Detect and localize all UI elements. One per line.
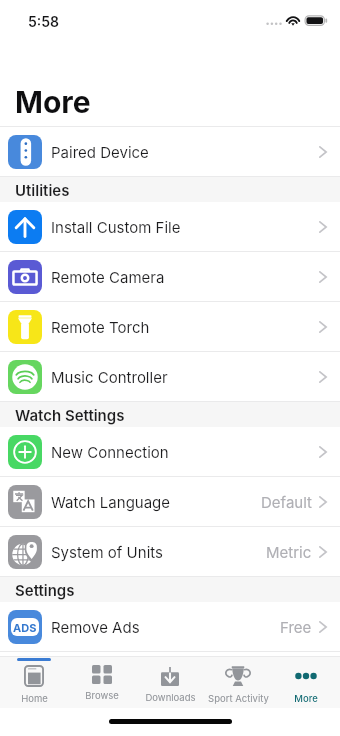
button[interactable]: Remote Torch <box>0 302 340 351</box>
button[interactable]: Watch Language <box>0 477 340 526</box>
staticText: Music Controller <box>51 368 168 386</box>
button[interactable]: Music Controller <box>0 352 340 401</box>
button[interactable]: Sport Activity <box>204 657 272 708</box>
staticText: Sport Activity <box>208 693 269 704</box>
staticText: Watch Language <box>51 493 171 511</box>
staticText: ADS <box>13 621 37 634</box>
staticText: Remove Ads <box>51 618 140 636</box>
staticText: New Connection <box>51 443 169 461</box>
staticText: Utilities <box>15 181 70 199</box>
staticText: Downloads <box>145 692 196 703</box>
staticText: Free <box>280 618 312 636</box>
button[interactable]: Browse <box>68 657 136 708</box>
button[interactable]: Paired Device <box>0 127 340 176</box>
button[interactable]: Remote Camera <box>0 252 340 301</box>
staticText: Metric <box>266 543 312 561</box>
button[interactable]: More <box>272 657 340 708</box>
staticText: Home <box>21 693 48 704</box>
button[interactable]: ADS <box>0 602 340 651</box>
button[interactable]: Install Custom File <box>0 202 340 251</box>
staticText: More <box>294 693 318 704</box>
staticText: Browse <box>85 690 119 701</box>
other: Home <box>24 665 44 687</box>
staticText: More <box>15 84 91 120</box>
staticText: Default <box>261 493 312 511</box>
button[interactable]: New Connection <box>0 427 340 476</box>
staticText: System of Units <box>51 543 163 561</box>
button[interactable]: Downloads <box>136 657 204 708</box>
other: More <box>295 665 317 687</box>
other: Downloads <box>161 665 179 686</box>
staticText: Remote Torch <box>51 318 150 336</box>
button[interactable]: Home <box>0 657 68 708</box>
staticText: 5:58 <box>28 13 60 30</box>
staticText: Settings <box>15 581 75 599</box>
other: Sport Activity <box>226 665 250 687</box>
staticText: Watch Settings <box>15 406 125 424</box>
staticText: Remote Camera <box>51 268 165 286</box>
button[interactable]: System of Units <box>0 527 340 576</box>
other: Browse <box>92 665 112 684</box>
staticText: Paired Device <box>51 143 149 161</box>
staticText: Install Custom File <box>51 218 181 236</box>
